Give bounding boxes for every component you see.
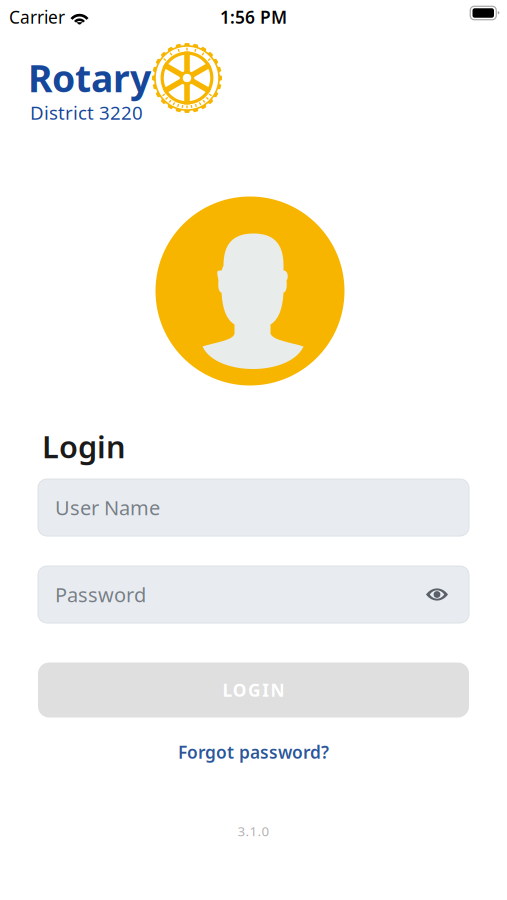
button[interactable]: Password: [38, 566, 469, 623]
staticText: Login: [42, 426, 126, 467]
staticText: User Name: [55, 494, 160, 521]
staticText: LOGIN: [222, 678, 285, 701]
staticText: District 3220: [30, 100, 143, 125]
staticText: Rotary: [28, 53, 151, 103]
staticText: Carrier: [9, 5, 65, 28]
staticText: 3.1.0: [237, 822, 269, 840]
staticText: Password: [55, 581, 146, 608]
button[interactable]: LOGIN: [38, 662, 469, 717]
button[interactable]: Forgot password?: [143, 736, 363, 768]
staticText: Forgot password?: [178, 740, 329, 763]
button[interactable]: Show password: [422, 579, 452, 609]
staticText: 1:56 PM: [220, 5, 287, 28]
button[interactable]: User Name: [38, 479, 469, 536]
